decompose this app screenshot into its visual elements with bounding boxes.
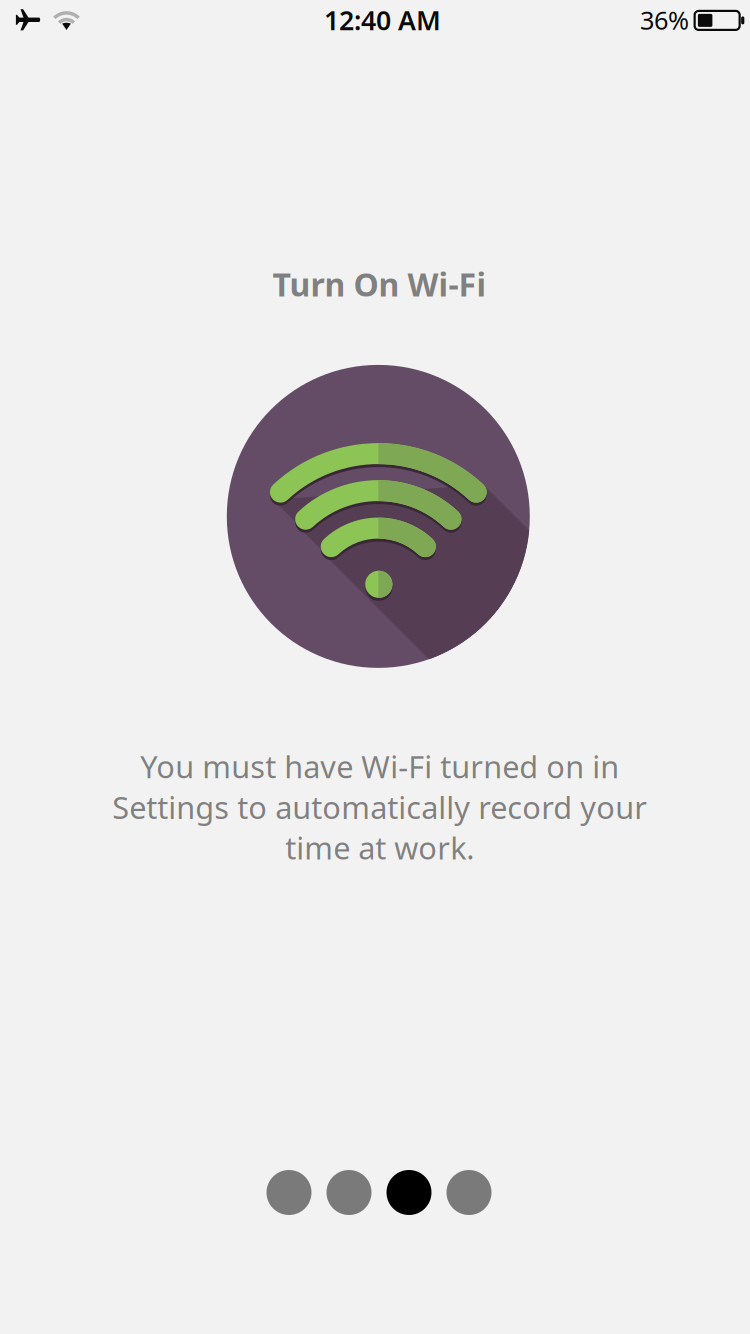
staticText: Turn On Wi-Fi [272, 263, 486, 305]
staticText: 36% [640, 3, 689, 37]
staticText: You must have Wi-Fi turned on in Setting… [112, 746, 647, 868]
staticText: 12:40 AM [324, 2, 441, 38]
